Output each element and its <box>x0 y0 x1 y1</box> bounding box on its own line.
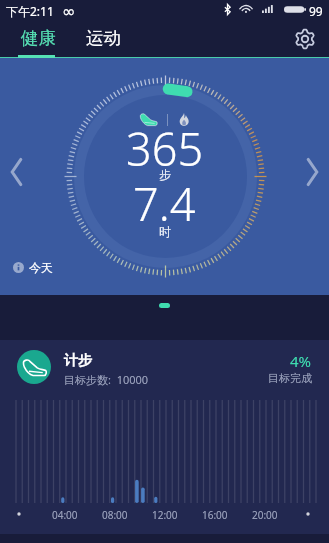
button[interactable]: Next day <box>300 154 324 190</box>
button[interactable]: Settings <box>292 26 318 52</box>
staticText: 下午2:11 <box>6 3 54 19</box>
button[interactable]: Previous day <box>5 154 29 190</box>
staticText: 计步 <box>64 352 92 370</box>
button[interactable]: 运动 <box>86 27 121 49</box>
staticText: 运动 <box>86 27 121 49</box>
staticText: 时 <box>159 224 171 239</box>
staticText: 今天 <box>29 260 53 275</box>
button[interactable]: 今天 <box>13 260 53 275</box>
staticText: 目标完成 <box>268 371 312 385</box>
button[interactable]: 健康 <box>21 27 56 49</box>
staticText: 365 <box>126 118 204 179</box>
staticText: 健康 <box>21 27 56 49</box>
staticText: 99 <box>309 3 323 19</box>
staticText: 20:00 <box>252 508 278 522</box>
staticText: 7.4 <box>133 173 196 234</box>
staticText: 16:00 <box>202 508 228 522</box>
staticText: 目标步数: 10000 <box>64 372 149 387</box>
staticText: 04:00 <box>52 508 78 522</box>
button[interactable]: 计步 <box>0 340 329 395</box>
staticText: ∞ <box>62 2 76 21</box>
staticText: 12:00 <box>152 508 178 522</box>
staticText: 4% <box>290 351 312 371</box>
staticText: 步 <box>159 167 171 182</box>
staticText: 08:00 <box>102 508 128 522</box>
